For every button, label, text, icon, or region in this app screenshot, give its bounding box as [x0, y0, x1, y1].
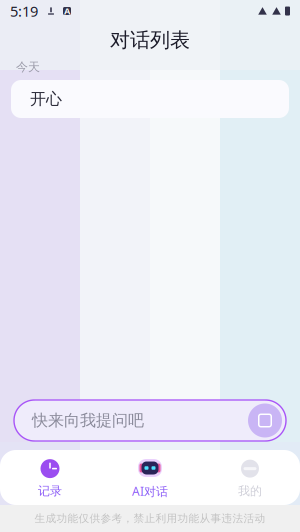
staticText: AI对话 — [132, 483, 168, 499]
staticText: 对话列表 — [110, 28, 190, 52]
button[interactable]: AI对话 — [100, 450, 200, 505]
staticText: 5:19 — [10, 1, 38, 21]
staticText: 生成功能仅供参考，禁止利用功能从事违法活动 — [34, 512, 265, 525]
staticText: 今天 — [16, 60, 40, 74]
staticText: 快来向我提问吧 — [32, 411, 144, 430]
button[interactable]: 发送 — [248, 403, 282, 437]
staticText: 记录 — [38, 484, 62, 498]
button[interactable]: 记录 — [0, 450, 100, 505]
staticText: 开心 — [30, 89, 62, 109]
staticText: 我的 — [238, 484, 262, 498]
staticText: A — [64, 5, 70, 17]
button[interactable]: 开心 — [11, 80, 289, 118]
button[interactable]: 我的 — [200, 450, 300, 505]
